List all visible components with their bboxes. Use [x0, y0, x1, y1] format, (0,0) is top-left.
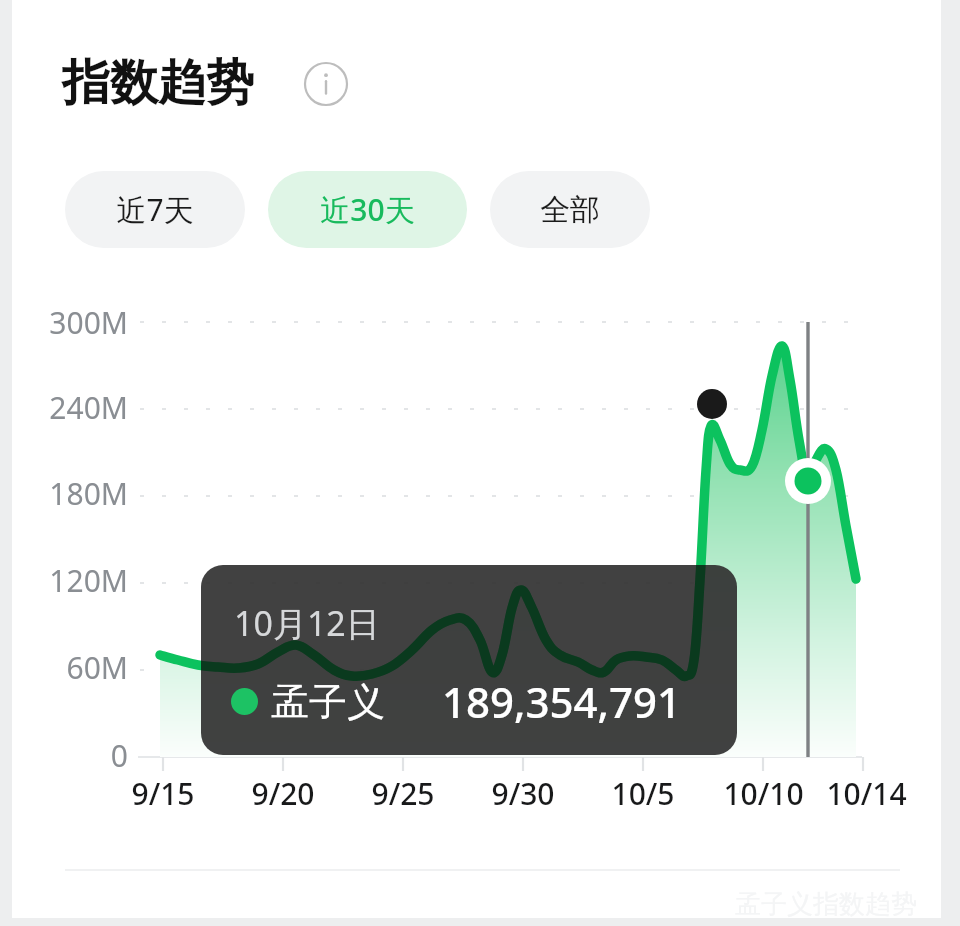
button[interactable]: Info about index trend [300, 58, 352, 110]
staticText: 9/20 [251, 773, 315, 814]
staticText: 10/10 [723, 773, 804, 814]
button[interactable]: 近7天 [65, 171, 245, 248]
staticText: 189,354,791 [442, 673, 682, 729]
staticText: 240M [49, 387, 128, 428]
staticText: 指数趋势 [62, 53, 254, 113]
button[interactable]: 近30天 [268, 171, 467, 248]
staticText: 全部 [540, 191, 600, 229]
staticText: 0 [110, 735, 128, 776]
button[interactable]: 全部 [490, 171, 650, 248]
staticText: 近7天 [116, 189, 194, 230]
staticText: 9/25 [371, 773, 435, 814]
staticText: 10/5 [611, 773, 675, 814]
staticText: 孟子义指数趋势 [735, 888, 917, 921]
staticText: 10/14 [826, 773, 907, 814]
staticText: 60M [66, 647, 128, 688]
staticText: 9/30 [491, 773, 555, 814]
staticText: 孟子义 [271, 678, 385, 726]
staticText: 9/15 [131, 773, 195, 814]
staticText: 300M [49, 302, 128, 343]
staticText: 120M [49, 560, 128, 601]
staticText: 10月12日 [234, 600, 380, 646]
staticText: 180M [49, 473, 128, 514]
staticText: 近30天 [320, 189, 415, 230]
